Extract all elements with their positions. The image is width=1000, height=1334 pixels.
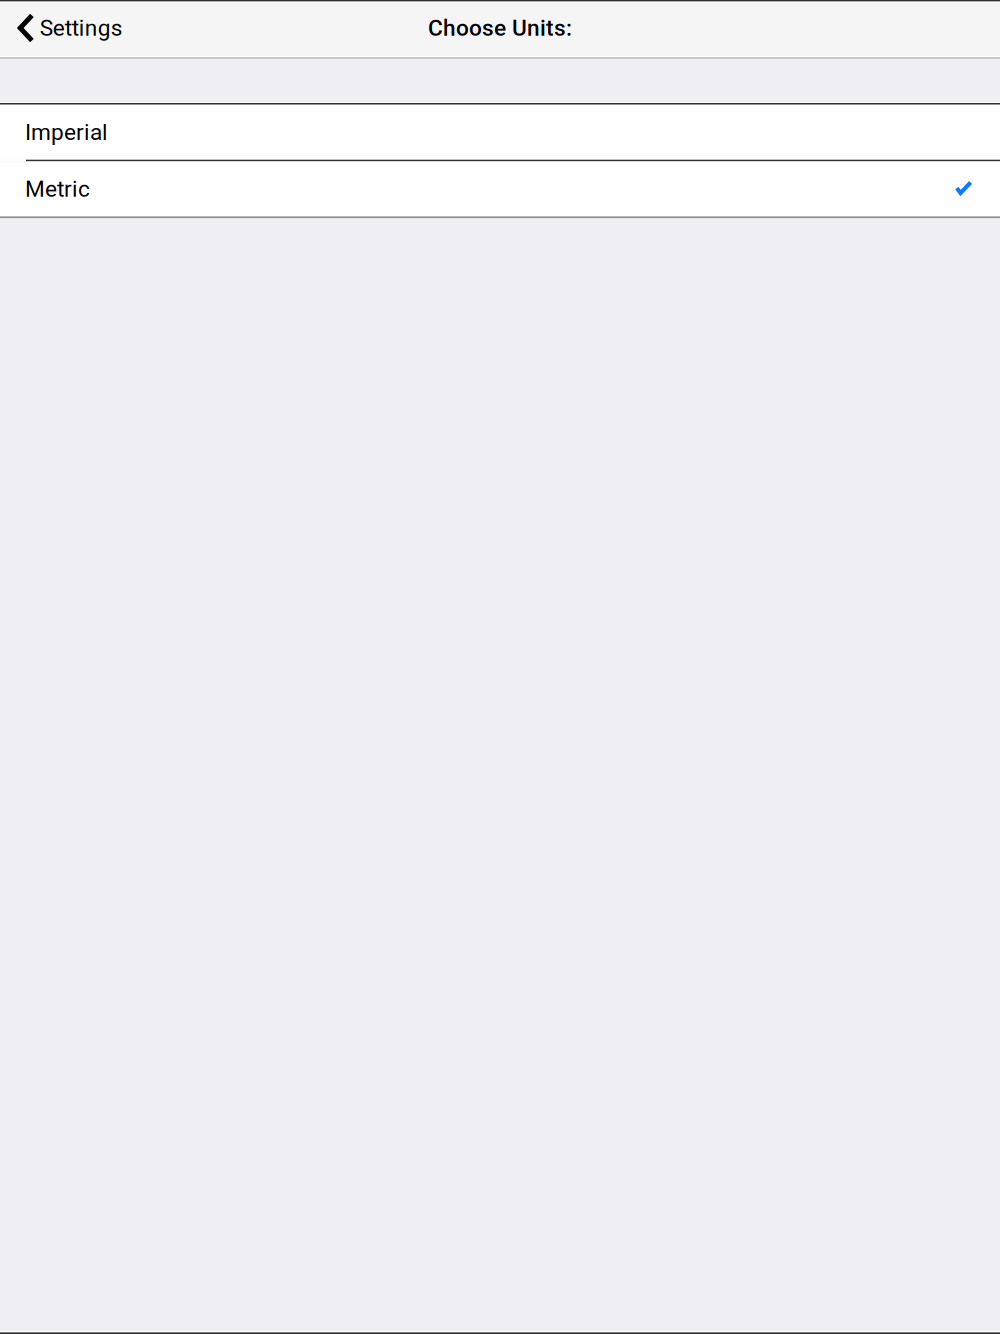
staticText: Metric [25, 176, 90, 202]
staticText: Imperial [25, 119, 108, 145]
button[interactable]: Imperial [0, 105, 1000, 160]
button[interactable]: Metric [0, 161, 1000, 216]
staticText: Settings [40, 15, 123, 41]
button[interactable]: Back to Settings [0, 0, 135, 56]
staticText: Choose Units: [428, 15, 572, 41]
